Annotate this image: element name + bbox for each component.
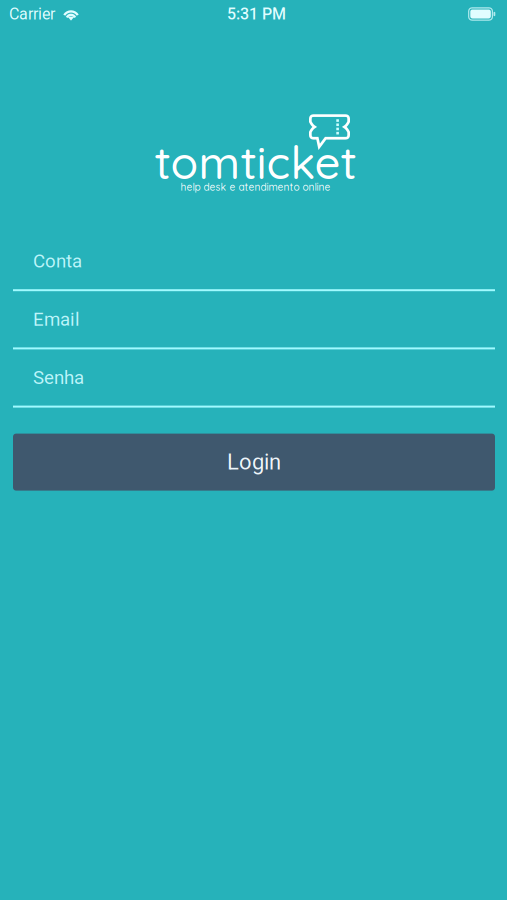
- staticText: Conta: [33, 250, 82, 272]
- staticText: Login: [227, 449, 281, 475]
- staticText: Email: [33, 308, 80, 330]
- button[interactable]: Login: [13, 434, 495, 491]
- staticText: Carrier: [9, 5, 55, 23]
- staticText: Senha: [33, 367, 84, 388]
- button[interactable]: Conta: [13, 233, 495, 291]
- button[interactable]: Email: [13, 291, 495, 349]
- button[interactable]: Senha: [13, 349, 495, 408]
- staticText: help desk e atendimento online: [180, 181, 330, 193]
- staticText: tomticket: [154, 134, 356, 190]
- staticText: 5:31 PM: [227, 5, 286, 23]
